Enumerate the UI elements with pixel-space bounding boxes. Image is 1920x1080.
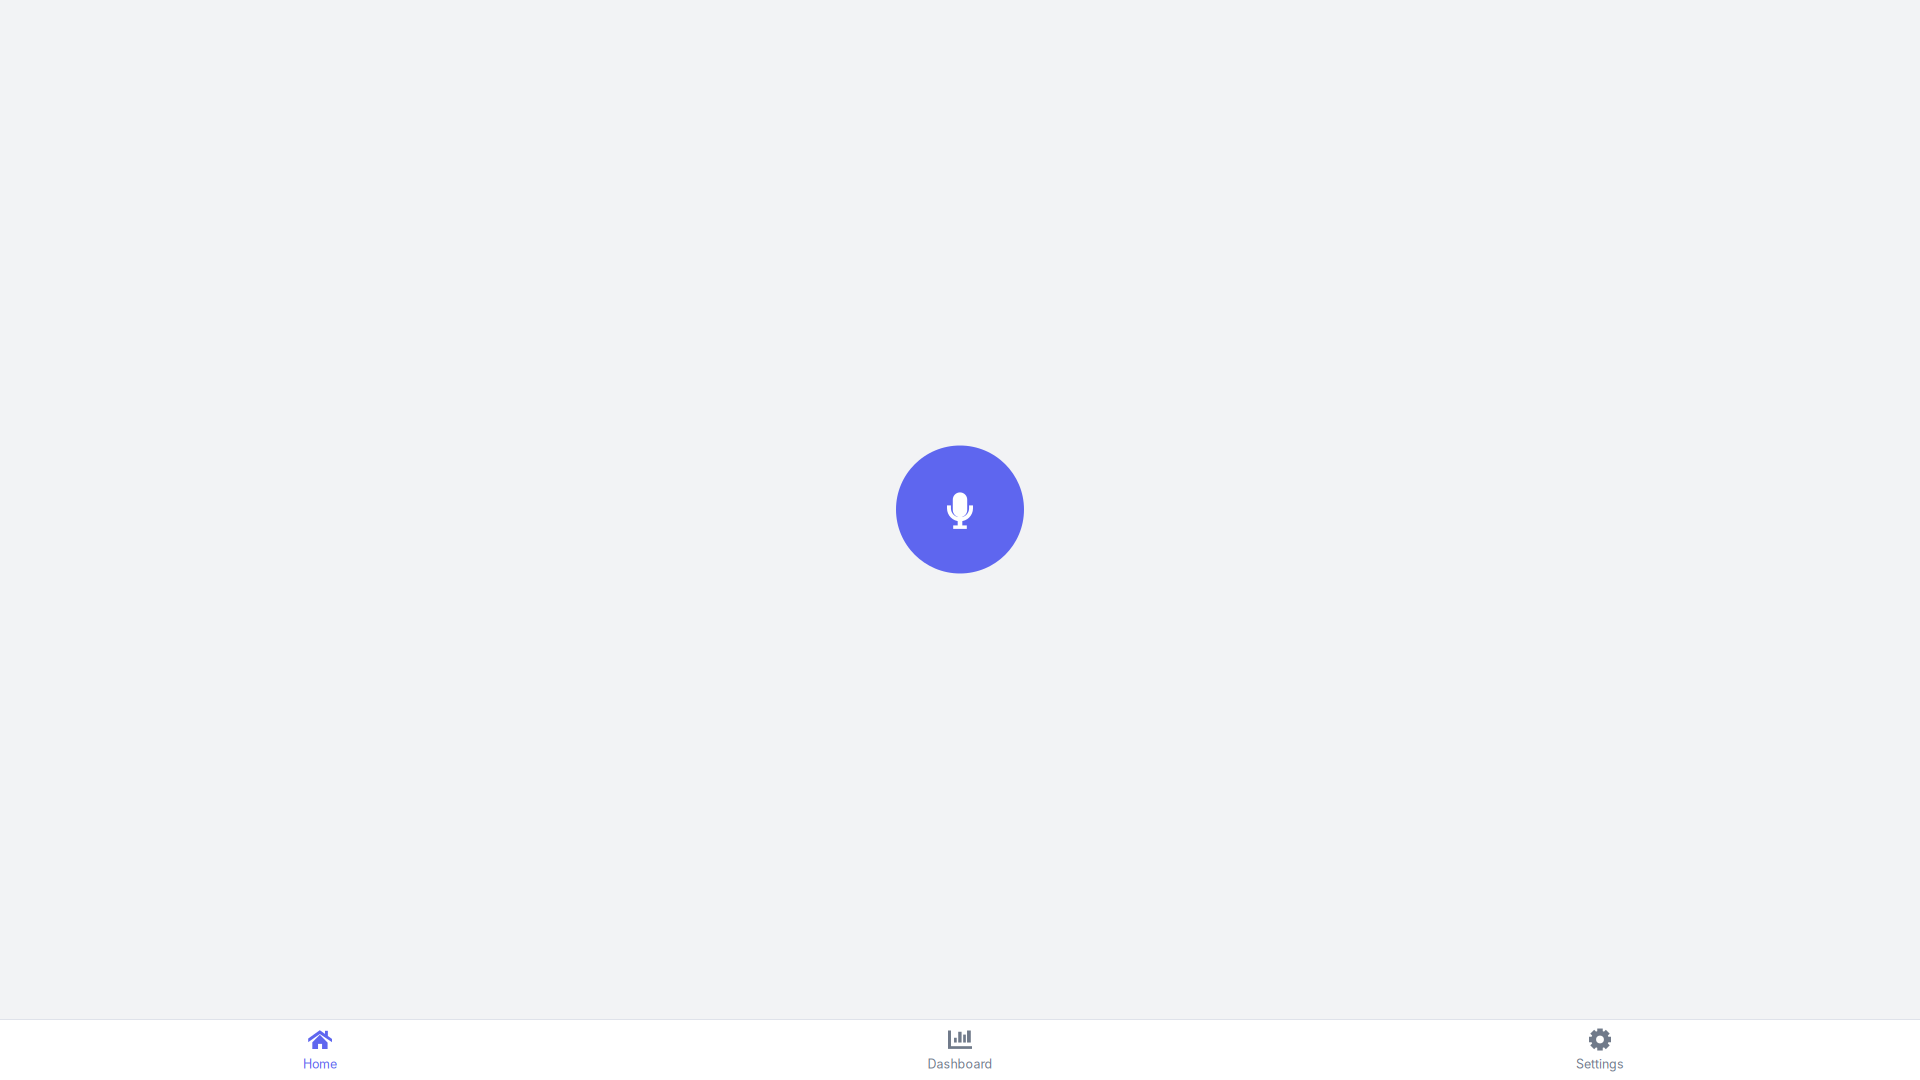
staticText: Settings [1576,1056,1624,1071]
staticText: Home [303,1056,337,1071]
staticText: Dashboard [927,1056,992,1071]
button[interactable]: Dashboard [640,1017,1280,1080]
button[interactable]: Settings [1280,1017,1920,1080]
button[interactable]: Home [0,1017,640,1080]
button[interactable]: Record [896,445,1024,573]
